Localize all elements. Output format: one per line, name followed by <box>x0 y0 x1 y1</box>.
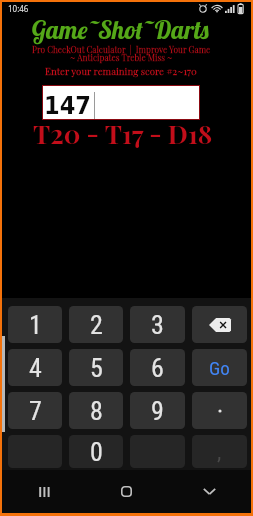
button[interactable]: 9 <box>130 392 185 429</box>
staticText: 0 <box>90 437 103 467</box>
button[interactable]: 147 <box>43 86 199 119</box>
button[interactable]: Go <box>192 349 247 386</box>
staticText: Go <box>209 357 230 379</box>
staticText: 5 <box>90 353 103 383</box>
staticText: 7 <box>29 396 42 426</box>
button[interactable]: 7 <box>8 392 62 429</box>
staticText: 2 <box>90 310 103 340</box>
staticText: ~ Anticipates Treble Miss ~ <box>70 52 173 63</box>
staticText: 147 <box>44 91 91 120</box>
button[interactable]: 1 <box>8 306 62 343</box>
staticText: 8 <box>90 396 103 426</box>
staticText: Pro CheckOut Calculator | Improve Your G… <box>32 44 211 55</box>
button[interactable]: 2 <box>69 306 123 343</box>
staticText: 3 <box>151 310 164 340</box>
staticText: , <box>217 439 222 465</box>
staticText: T20 - T17 - D18 <box>33 116 213 150</box>
button[interactable]: Backspace <box>192 306 247 343</box>
staticText: Enter your remaining score #2~170 <box>45 65 197 78</box>
button[interactable]: 4 <box>8 349 62 386</box>
button[interactable]: Decimal point <box>192 392 247 429</box>
staticText: 6 <box>151 353 164 383</box>
staticText: 10:46 <box>8 3 29 14</box>
button[interactable]: Home <box>85 470 168 513</box>
button[interactable]: 0 <box>69 435 123 468</box>
button[interactable]: 3 <box>130 306 185 343</box>
staticText: Game~Shot~Darts <box>31 14 211 45</box>
staticText: 4 <box>29 353 42 383</box>
button[interactable]: Back <box>168 470 251 513</box>
staticText: 1 <box>29 310 42 340</box>
button[interactable]: Recent apps <box>2 470 85 513</box>
staticText: 9 <box>151 396 164 426</box>
button[interactable]: 6 <box>130 349 185 386</box>
button[interactable]: 5 <box>69 349 123 386</box>
button[interactable]: 8 <box>69 392 123 429</box>
